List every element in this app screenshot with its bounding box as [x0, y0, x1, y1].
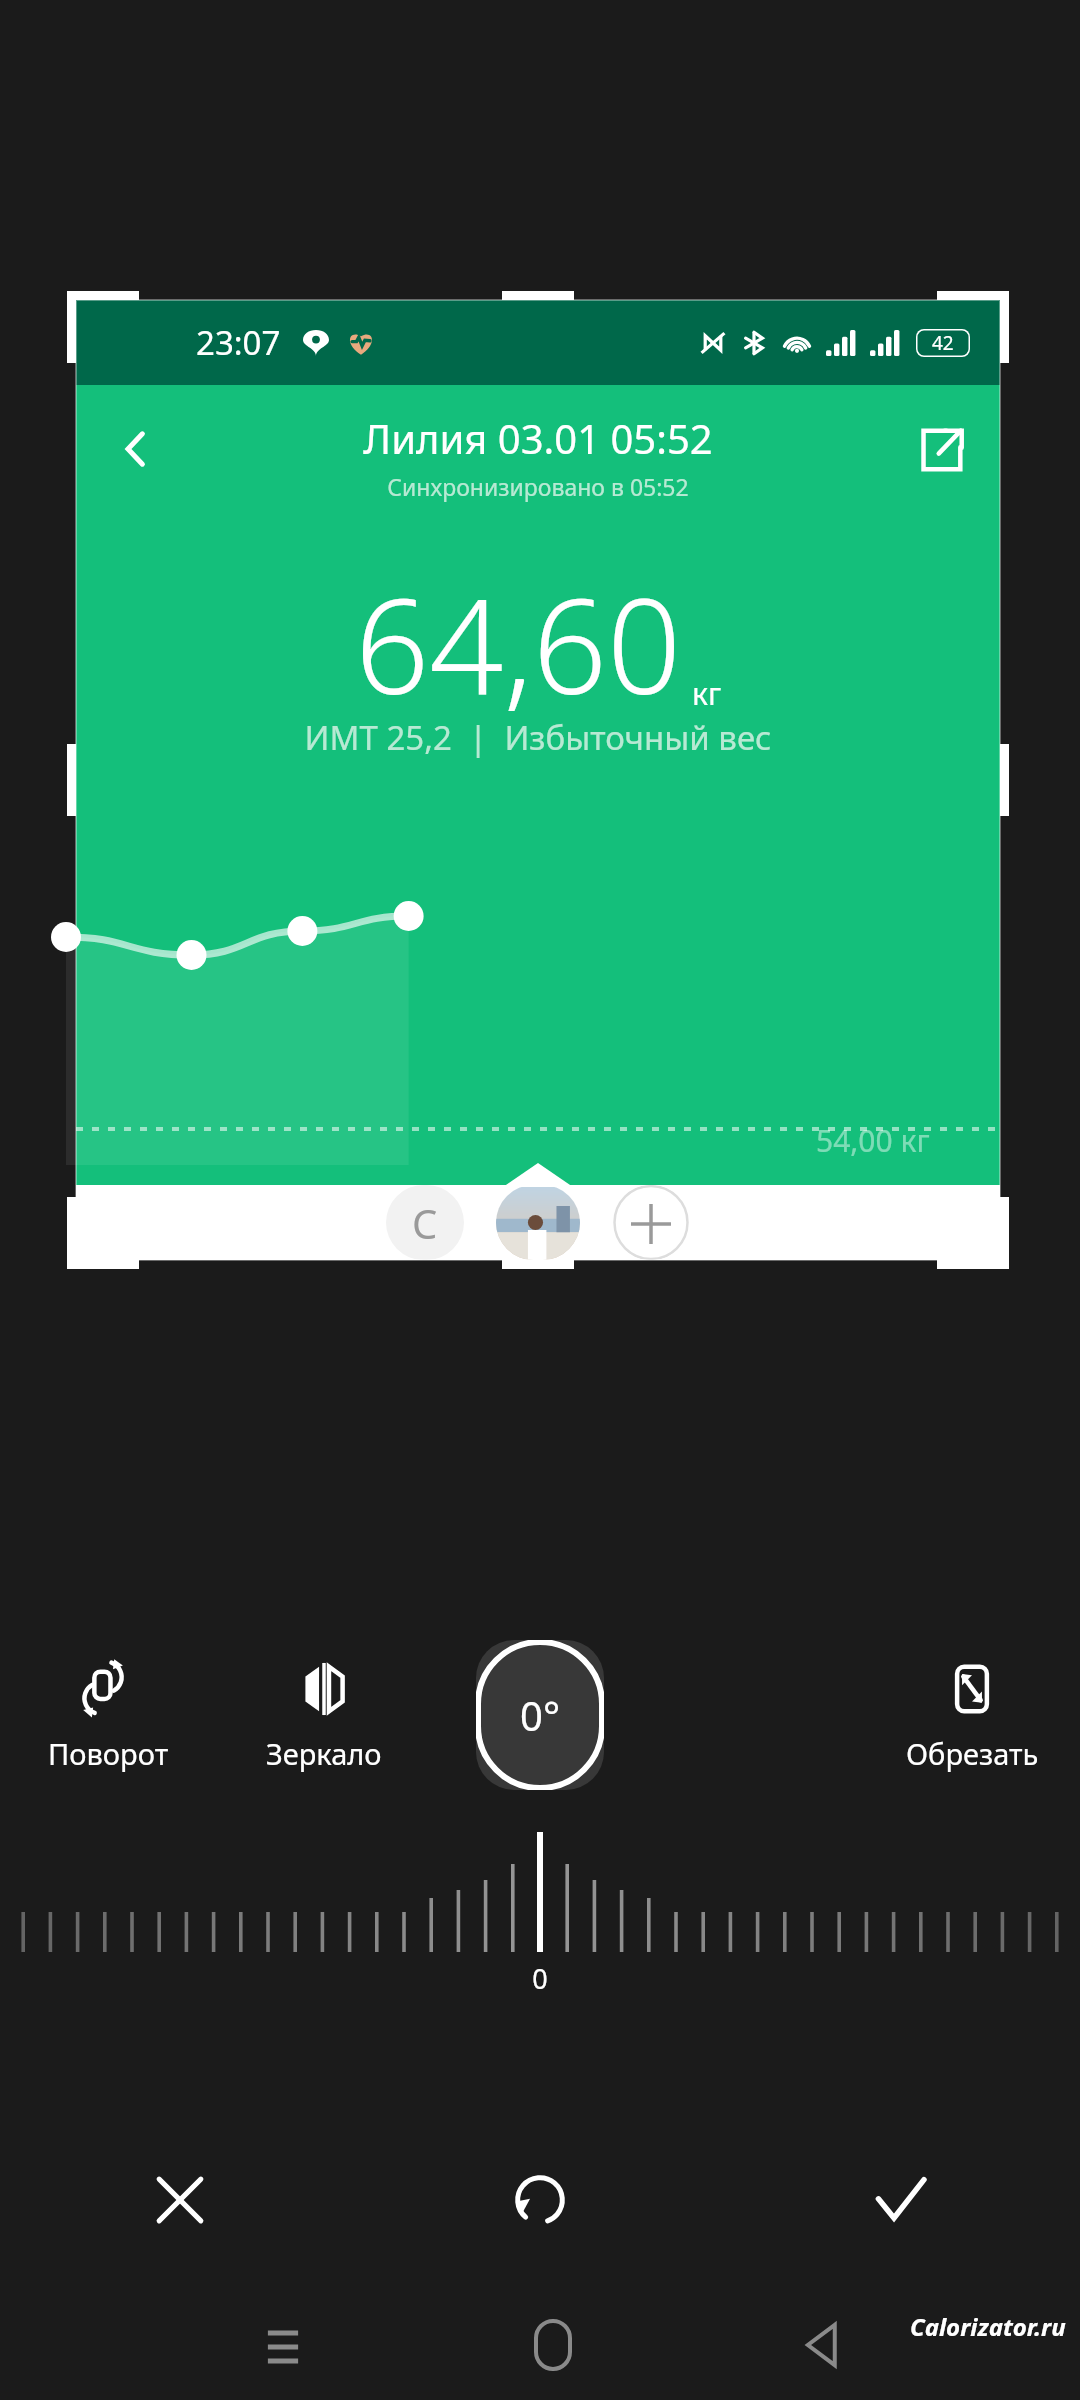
staticText: Лилия 03.01 05:52: [363, 411, 713, 465]
staticText: C: [412, 1196, 438, 1250]
staticText: Зеркало: [266, 1734, 382, 1773]
button[interactable]: Обрезать: [864, 1630, 1080, 1800]
staticText: Calorizator.ru: [910, 2310, 1066, 2343]
staticText: Поворот: [48, 1734, 169, 1773]
button[interactable]: Confirm: [720, 2130, 1080, 2270]
staticText: 54,00 кг: [816, 1120, 930, 1161]
staticText: 0: [0, 1960, 1080, 1997]
button[interactable]: Share: [898, 407, 984, 493]
button[interactable]: Recents: [148, 2290, 418, 2400]
staticText: Синхронизировано в 05:52: [387, 471, 689, 502]
button[interactable]: Reset: [360, 2130, 720, 2270]
staticText: 23:07: [196, 320, 281, 365]
staticText: 0°: [520, 1688, 560, 1742]
staticText: Обрезать: [906, 1734, 1039, 1773]
button[interactable]: Поворот: [0, 1630, 216, 1800]
button[interactable]: 0°: [476, 1640, 604, 1790]
staticText: 64,60: [355, 555, 682, 732]
button[interactable]: Back: [96, 409, 176, 489]
button[interactable]: Add: [612, 1185, 690, 1260]
button[interactable]: C: [386, 1185, 464, 1260]
button[interactable]: Profile photo: [496, 1185, 580, 1260]
staticText: ИМТ 25,2 | Избыточный вес: [76, 715, 1000, 760]
button[interactable]: Back: [688, 2290, 958, 2400]
button[interactable]: Home: [418, 2290, 688, 2400]
staticText: кг: [692, 673, 722, 714]
button[interactable]: Зеркало: [216, 1630, 432, 1800]
staticText: 42: [932, 330, 954, 356]
button[interactable]: Cancel: [0, 2130, 360, 2270]
